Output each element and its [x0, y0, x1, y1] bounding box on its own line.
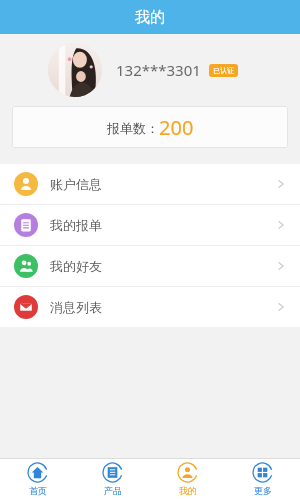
button[interactable]: 我的好友 — [0, 246, 300, 286]
staticText: 我的 — [135, 8, 165, 27]
button[interactable]: Profile photo — [0, 34, 300, 106]
staticText: 200 — [159, 114, 194, 141]
button[interactable]: 产品 — [75, 458, 150, 500]
button[interactable]: 消息列表 — [0, 287, 300, 327]
button[interactable]: 我的 — [150, 458, 225, 500]
staticText: 已认证 — [213, 66, 234, 75]
button[interactable]: 报单数： — [12, 106, 288, 148]
staticText: 账户信息 — [50, 176, 102, 192]
button[interactable]: 首页 — [0, 458, 75, 500]
staticText: 我的 — [179, 485, 197, 496]
staticText: 产品 — [104, 485, 122, 496]
staticText: 我的好友 — [50, 258, 102, 274]
button[interactable]: 账户信息 — [0, 164, 300, 204]
staticText: 更多 — [254, 485, 272, 496]
staticText: 首页 — [29, 485, 47, 496]
button[interactable]: Profile photo — [48, 43, 102, 97]
staticText: 我的报单 — [50, 217, 102, 233]
button[interactable]: 我的报单 — [0, 205, 300, 245]
staticText: 报单数： — [107, 120, 159, 136]
staticText: 132***3301 — [116, 60, 201, 80]
staticText: 消息列表 — [50, 299, 102, 315]
button[interactable]: 更多 — [225, 458, 300, 500]
